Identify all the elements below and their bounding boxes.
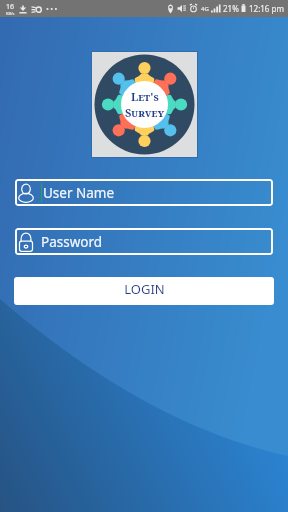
staticText: 16: [6, 2, 15, 12]
staticText: User Name: [43, 184, 115, 202]
staticText: 12:16 pm: [249, 3, 284, 14]
staticText: KB/s: [6, 11, 15, 16]
button[interactable]: User Name: [15, 179, 273, 206]
staticText: Lᴇᴛ's: [131, 89, 159, 104]
staticText: Sᴜʀᴠᴇʏ: [125, 105, 165, 120]
button[interactable]: LOGIN: [14, 277, 274, 305]
staticText: 4G: [201, 5, 209, 13]
staticText: Password: [41, 233, 103, 251]
button[interactable]: Password: [15, 228, 273, 255]
staticText: LOGIN: [124, 280, 165, 298]
staticText: 21%: [223, 3, 239, 14]
